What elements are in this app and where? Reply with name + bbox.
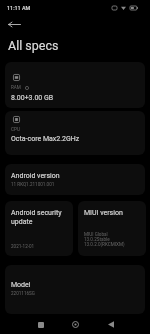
staticText: MIUI version	[84, 209, 123, 217]
staticText: 13.0.2.0(RKCMIXM)	[84, 242, 125, 247]
staticText: Model	[11, 281, 31, 289]
staticText: CPU	[11, 127, 20, 132]
staticText: All specs	[8, 38, 59, 53]
button[interactable]: MIUI version	[78, 201, 146, 256]
staticText: 13.0.2Stable	[84, 237, 110, 242]
button[interactable]: Home	[65, 314, 86, 334]
staticText: MIUI Global	[84, 232, 108, 237]
staticText: Android version	[11, 172, 60, 180]
staticText: 2021-12-01	[11, 244, 35, 249]
staticText: Octa-core Max2.2GHz	[11, 135, 80, 143]
button[interactable]: Model	[5, 265, 145, 314]
button[interactable]: Recent apps	[30, 314, 51, 334]
staticText: Android security update	[11, 209, 62, 225]
button[interactable]: Android version	[5, 164, 145, 195]
button[interactable]: Back	[100, 314, 121, 334]
staticText: 11:11 AM	[7, 5, 31, 11]
staticText: RAM	[11, 85, 21, 90]
staticText: 11 RKQ1.211001.001	[11, 182, 55, 187]
button[interactable]: Android security update	[5, 201, 73, 256]
button[interactable]: RAM	[5, 62, 145, 108]
staticText: 2201116SG	[11, 291, 35, 296]
staticText: 8.00+3.00 GB	[11, 94, 54, 102]
button[interactable]: CPU	[5, 111, 145, 155]
button[interactable]: Back	[4, 14, 24, 34]
